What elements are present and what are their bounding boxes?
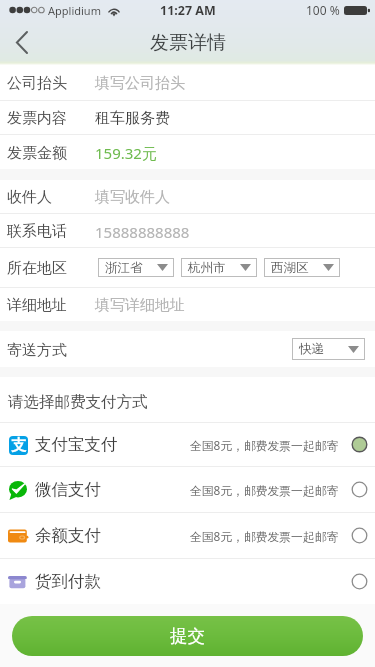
button[interactable]: 货到付款 <box>0 559 375 604</box>
staticText: 寄送方式 <box>7 341 67 360</box>
button[interactable]: 联系电话 <box>0 214 375 247</box>
button[interactable]: 快递 <box>292 338 365 360</box>
staticText: 公司抬头 <box>7 74 95 93</box>
button[interactable]: 微信支付 <box>0 467 375 512</box>
button[interactable]: 发票金额 <box>0 135 375 169</box>
staticText: 11:27 AM <box>160 2 216 19</box>
button[interactable]: 浙江省 <box>98 258 174 277</box>
staticText: 15888888888 <box>95 222 190 242</box>
staticText: 微信支付 <box>35 479 101 500</box>
button[interactable]: 支 <box>0 423 375 466</box>
staticText: 浙江省 <box>105 260 143 276</box>
staticText: 全国8元，邮费发票一起邮寄 <box>190 482 339 498</box>
staticText: 填写收件人 <box>95 188 170 207</box>
staticText: 联系电话 <box>7 222 95 241</box>
staticText: 提交 <box>170 625 205 647</box>
button[interactable]: 提交 <box>12 616 363 656</box>
staticText: 填写公司抬头 <box>95 74 185 93</box>
staticText: Applidium <box>48 3 101 18</box>
button[interactable]: 杭州市 <box>181 258 257 277</box>
button[interactable]: 余额支付 <box>0 513 375 558</box>
button[interactable]: Back <box>0 21 42 63</box>
button[interactable]: 详细地址 <box>0 288 375 321</box>
staticText: 货到付款 <box>35 571 101 592</box>
staticText: 收件人 <box>7 188 95 207</box>
staticText: 余额支付 <box>35 525 101 546</box>
staticText: 详细地址 <box>7 296 95 315</box>
staticText: 全国8元，邮费发票一起邮寄 <box>190 528 339 544</box>
staticText: 支 <box>11 436 26 455</box>
button[interactable]: 西湖区 <box>264 258 340 277</box>
staticText: 发票内容 <box>7 109 95 128</box>
staticText: 杭州市 <box>188 260 226 276</box>
staticText: 请选择邮费支付方式 <box>8 392 148 412</box>
staticText: 发票详情 <box>150 31 226 55</box>
staticText: 支付宝支付 <box>35 434 118 455</box>
staticText: 159.32元 <box>95 143 157 163</box>
button[interactable]: 发票内容 <box>0 101 375 134</box>
button[interactable]: 收件人 <box>0 180 375 213</box>
staticText: 全国8元，邮费发票一起邮寄 <box>190 437 339 453</box>
staticText: 填写详细地址 <box>95 296 185 315</box>
staticText: 西湖区 <box>271 260 309 276</box>
staticText: 100 % <box>306 2 340 18</box>
staticText: 租车服务费 <box>95 109 170 128</box>
button[interactable]: 公司抬头 <box>0 65 375 100</box>
staticText: 所在地区 <box>7 259 98 278</box>
staticText: 发票金额 <box>7 144 95 163</box>
staticText: 快递 <box>299 341 324 357</box>
